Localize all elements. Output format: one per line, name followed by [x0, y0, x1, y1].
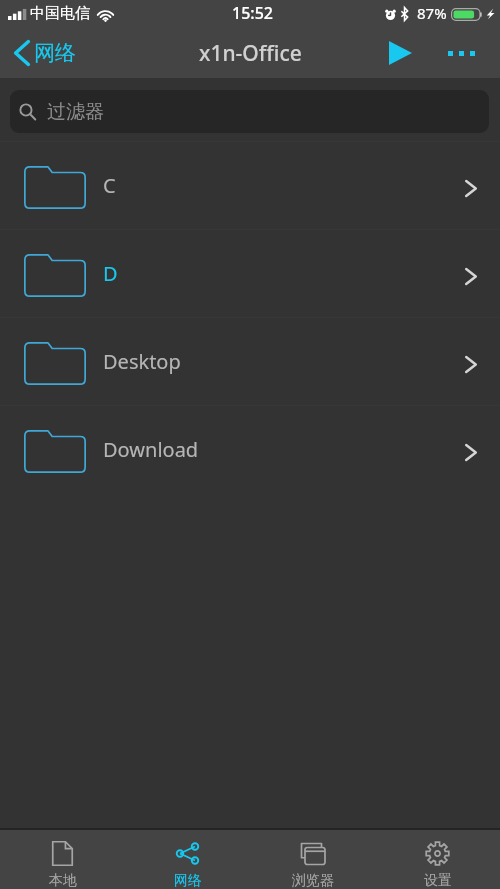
button[interactable]: 过滤器 — [10, 90, 489, 133]
button[interactable]: 网络 — [125, 830, 250, 889]
staticText: Download — [103, 436, 199, 463]
button[interactable]: Play — [376, 30, 422, 76]
staticText: 过滤器 — [47, 100, 104, 124]
staticText: 设置 — [424, 872, 452, 889]
button[interactable]: Download — [0, 406, 500, 493]
button[interactable]: More options — [435, 28, 487, 78]
staticText: 本地 — [49, 872, 77, 889]
staticText: x1n-Office — [199, 39, 302, 68]
button[interactable]: 本地 — [0, 830, 125, 889]
button[interactable]: D — [0, 230, 500, 317]
staticText: 网络 — [34, 40, 76, 66]
staticText: D — [103, 260, 118, 287]
button[interactable]: 浏览器 — [250, 830, 375, 889]
button[interactable]: Desktop — [0, 318, 500, 405]
button[interactable]: 设置 — [375, 830, 500, 889]
staticText: 15:52 — [232, 2, 273, 24]
staticText: 网络 — [174, 872, 202, 889]
staticText: C — [103, 172, 116, 199]
staticText: 中国电信 — [30, 4, 90, 23]
staticText: Desktop — [103, 348, 181, 375]
button[interactable]: C — [0, 142, 500, 229]
staticText: 87% — [417, 3, 447, 23]
staticText: 浏览器 — [292, 872, 334, 889]
button[interactable]: 网络 — [0, 34, 88, 72]
